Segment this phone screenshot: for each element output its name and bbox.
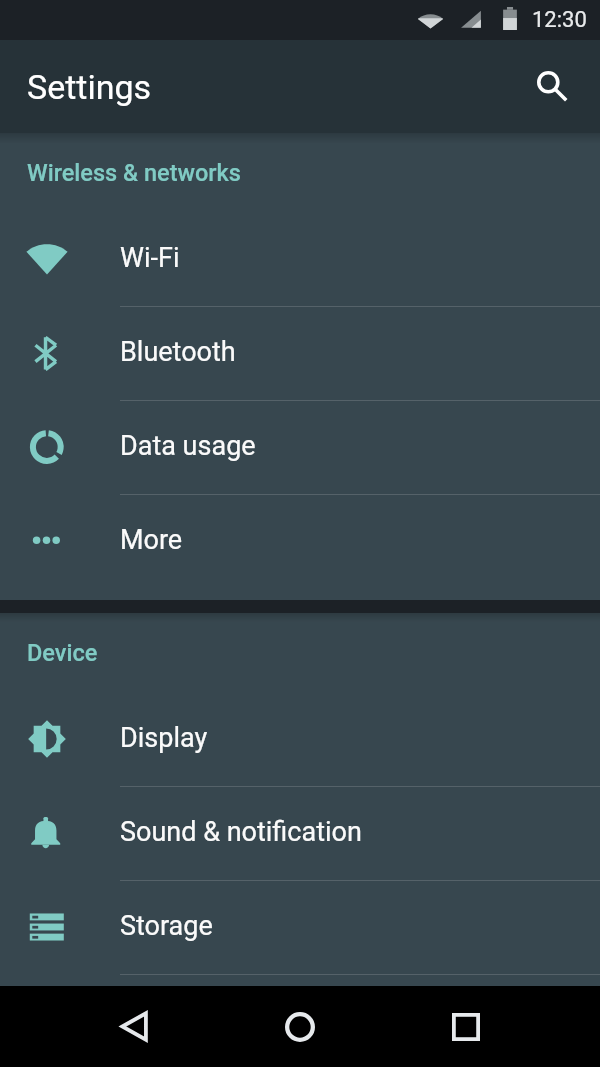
staticText: More	[120, 524, 183, 556]
button[interactable]: Display	[0, 693, 600, 787]
button[interactable]: Back	[51, 986, 217, 1067]
staticText: Wireless & networks	[27, 159, 242, 187]
staticText: Data usage	[120, 430, 256, 462]
button[interactable]: Storage	[0, 881, 600, 975]
staticText: Bluetooth	[120, 336, 236, 368]
staticText: Wi-Fi	[120, 242, 180, 274]
button[interactable]: Wi-Fi	[0, 213, 600, 307]
staticText: 12:30	[532, 7, 587, 33]
button[interactable]: Recents	[383, 986, 549, 1067]
button[interactable]: Search	[524, 59, 580, 115]
staticText: Storage	[120, 910, 213, 942]
button[interactable]: More	[0, 495, 600, 589]
button[interactable]: Data usage	[0, 401, 600, 495]
button[interactable]: Sound & notification	[0, 787, 600, 881]
staticText: Device	[27, 639, 98, 667]
button[interactable]: Home	[217, 986, 383, 1067]
staticText: Sound & notification	[120, 816, 362, 848]
staticText: Display	[120, 722, 208, 754]
staticText: Settings	[27, 67, 152, 107]
button[interactable]: Bluetooth	[0, 307, 600, 401]
